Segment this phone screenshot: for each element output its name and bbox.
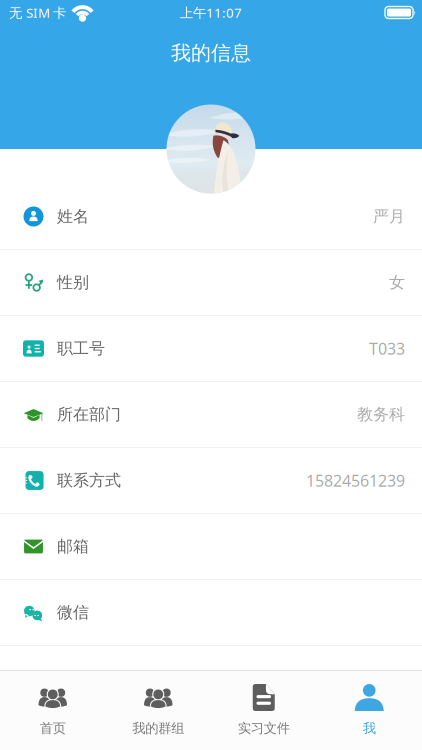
- staticText: 上午11:07: [180, 4, 242, 21]
- staticText: 微信: [57, 603, 89, 622]
- staticText: 实习文件: [238, 720, 290, 736]
- button[interactable]: 我的群组: [105, 671, 211, 750]
- staticText: T033: [369, 338, 405, 359]
- button[interactable]: 微信: [0, 580, 422, 646]
- button[interactable]: 邮箱: [0, 514, 422, 580]
- button[interactable]: 实习文件: [211, 671, 316, 750]
- staticText: 我的群组: [132, 720, 184, 736]
- staticText: 女: [389, 273, 405, 292]
- staticText: 联系方式: [57, 471, 121, 490]
- staticText: 首页: [40, 720, 66, 736]
- staticText: 姓名: [57, 207, 89, 226]
- staticText: 我: [363, 720, 376, 736]
- staticText: 教务科: [357, 405, 405, 424]
- button[interactable]: 联系方式: [0, 448, 422, 514]
- button[interactable]: 姓名: [0, 184, 422, 250]
- button[interactable]: 性别: [0, 250, 422, 316]
- button[interactable]: 职工号: [0, 316, 422, 382]
- staticText: 我的信息: [171, 41, 251, 65]
- button[interactable]: 所在部门: [0, 382, 422, 448]
- staticText: 15824561239: [306, 470, 405, 491]
- staticText: 无 SIM 卡: [9, 4, 66, 21]
- staticText: 邮箱: [57, 537, 89, 556]
- staticText: 职工号: [57, 339, 105, 358]
- button[interactable]: 首页: [0, 671, 105, 750]
- staticText: 严月: [373, 207, 405, 226]
- staticText: 所在部门: [57, 405, 121, 424]
- button[interactable]: 我: [316, 671, 422, 750]
- staticText: 性别: [57, 273, 89, 292]
